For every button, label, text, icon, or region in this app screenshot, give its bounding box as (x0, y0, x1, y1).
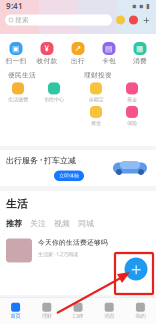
staticText: 理财投资 (84, 71, 112, 79)
staticText: ＋ (141, 13, 152, 26)
staticText: ↗ (74, 44, 81, 53)
button[interactable]: 生活缴费 (0, 82, 36, 103)
staticText: ▦ (136, 44, 144, 53)
staticText: 保险 (127, 120, 137, 126)
button[interactable]: ¥ (31, 42, 62, 65)
staticText: 出行 (71, 57, 85, 65)
staticText: 黄金 (91, 120, 101, 126)
button[interactable]: 关注 (30, 219, 46, 228)
button[interactable]: Red packet (129, 15, 138, 24)
staticText: 便民生活 (8, 71, 36, 79)
staticText: 理财 (42, 313, 52, 319)
button[interactable]: 首页 (0, 298, 31, 324)
staticText: 扫一扫 (5, 57, 26, 65)
staticText: ▪ ▪ ▮ (132, 2, 150, 10)
staticText: 首页 (11, 313, 21, 319)
button[interactable]: 黄金 (78, 106, 114, 126)
button[interactable]: 市民中心 (36, 82, 72, 103)
staticText: 消息 (104, 313, 114, 319)
button[interactable]: 基金 (114, 82, 150, 103)
button[interactable]: Compose (123, 256, 149, 282)
staticText: 立即体验 (59, 172, 79, 179)
button[interactable]: 口碑 (62, 298, 94, 324)
button[interactable]: 理财 (31, 298, 62, 324)
button[interactable]: ▤ (93, 42, 124, 65)
staticText: 9:41 (6, 1, 23, 11)
button[interactable]: ▣ (0, 42, 31, 65)
button[interactable]: 同城 (78, 219, 94, 228)
staticText: 搜索 (15, 16, 29, 24)
staticText: 同城 (78, 219, 94, 228)
staticText: 消费 (133, 57, 147, 65)
staticText: ＋ (127, 258, 144, 280)
button[interactable]: 余额宝 (78, 82, 114, 103)
button[interactable]: ▦ (124, 42, 155, 65)
staticText: 视频 (54, 219, 70, 228)
button[interactable]: Add (142, 15, 151, 24)
staticText: 基金 (127, 96, 137, 103)
staticText: ¥ (44, 43, 49, 54)
staticText: ▤ (105, 44, 113, 53)
staticText: 生活 (6, 197, 28, 211)
staticText: 关注 (30, 219, 46, 228)
button[interactable]: 消息 (94, 298, 125, 324)
button[interactable]: 保险 (114, 106, 150, 126)
staticText: 我的 (135, 313, 145, 319)
staticText: 出行服务 · 打车立减 (6, 155, 76, 165)
staticText: 口碑 (73, 313, 83, 319)
button[interactable]: 出行服务 · 打车立减 (0, 150, 156, 186)
staticText: 今天你的生活费还够吗 (38, 238, 108, 247)
button[interactable]: Coupons (116, 15, 125, 24)
staticText: ▣ (12, 44, 20, 53)
button[interactable]: 视频 (54, 219, 70, 228)
staticText: 市民中心 (44, 96, 64, 103)
button[interactable]: ↗ (62, 42, 93, 65)
button[interactable]: 推荐 (6, 219, 22, 228)
staticText: 生活家 · 1.2万阅读 (38, 251, 78, 258)
staticText: 推荐 (6, 219, 22, 228)
staticText: 收付款 (36, 57, 57, 65)
staticText: 生活缴费 (8, 96, 28, 103)
staticText: 卡包 (102, 57, 116, 65)
button[interactable]: 我的 (125, 298, 156, 324)
staticText: 余额宝 (88, 96, 103, 103)
